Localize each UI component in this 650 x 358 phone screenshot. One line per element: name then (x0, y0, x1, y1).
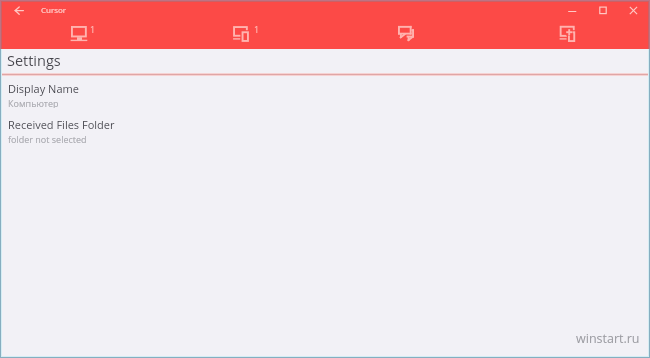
button[interactable]: Devices (163, 21, 324, 49)
staticText: 1 (254, 23, 260, 35)
button[interactable]: Back (4, 2, 29, 21)
button[interactable]: Close (617, 2, 648, 20)
button[interactable]: Minimize (555, 2, 586, 20)
staticText: Cursor (41, 4, 67, 15)
staticText: Display Name (8, 81, 79, 96)
button[interactable]: Desktops (2, 21, 163, 49)
staticText: Received Files Folder (8, 117, 115, 132)
staticText: Компьютер (8, 97, 59, 108)
staticText: folder not selected (8, 133, 87, 144)
button[interactable]: Received Files Folder (2, 117, 648, 143)
button[interactable]: Display Name (2, 81, 648, 107)
staticText: Settings (7, 51, 61, 71)
staticText: winstart.ru (576, 330, 640, 347)
button[interactable]: Chat (324, 21, 486, 49)
staticText: 1 (90, 23, 96, 35)
button[interactable]: Maximize (586, 2, 617, 20)
button[interactable]: Add device (486, 21, 648, 49)
